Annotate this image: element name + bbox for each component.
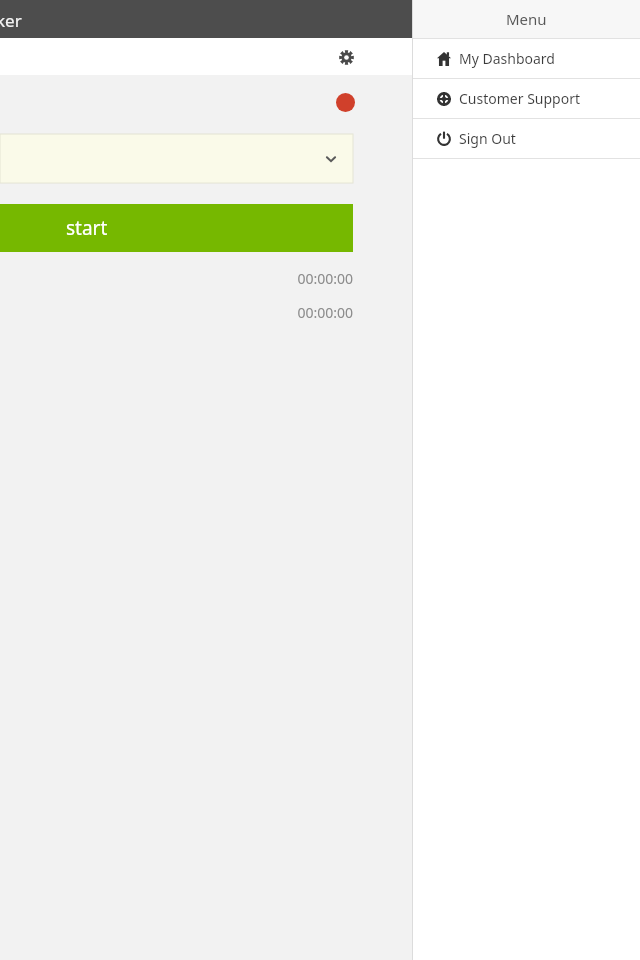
button[interactable]: start [0, 204, 353, 252]
staticText: ker [0, 9, 22, 32]
button[interactable]: Settings [328, 39, 364, 75]
staticText: Sign Out [459, 129, 516, 148]
button[interactable] [0, 134, 353, 183]
button[interactable]: Recording status [336, 93, 355, 112]
button[interactable]: My Dashboard [412, 39, 640, 78]
staticText: 00:00:00 [297, 269, 353, 288]
staticText: My Dashboard [459, 49, 555, 68]
button[interactable]: Customer Support [412, 79, 640, 118]
staticText: start [66, 215, 108, 241]
staticText: Customer Support [459, 89, 581, 108]
staticText: Menu [506, 9, 547, 29]
button[interactable]: Sign Out [412, 119, 640, 158]
staticText: 00:00:00 [297, 303, 353, 322]
